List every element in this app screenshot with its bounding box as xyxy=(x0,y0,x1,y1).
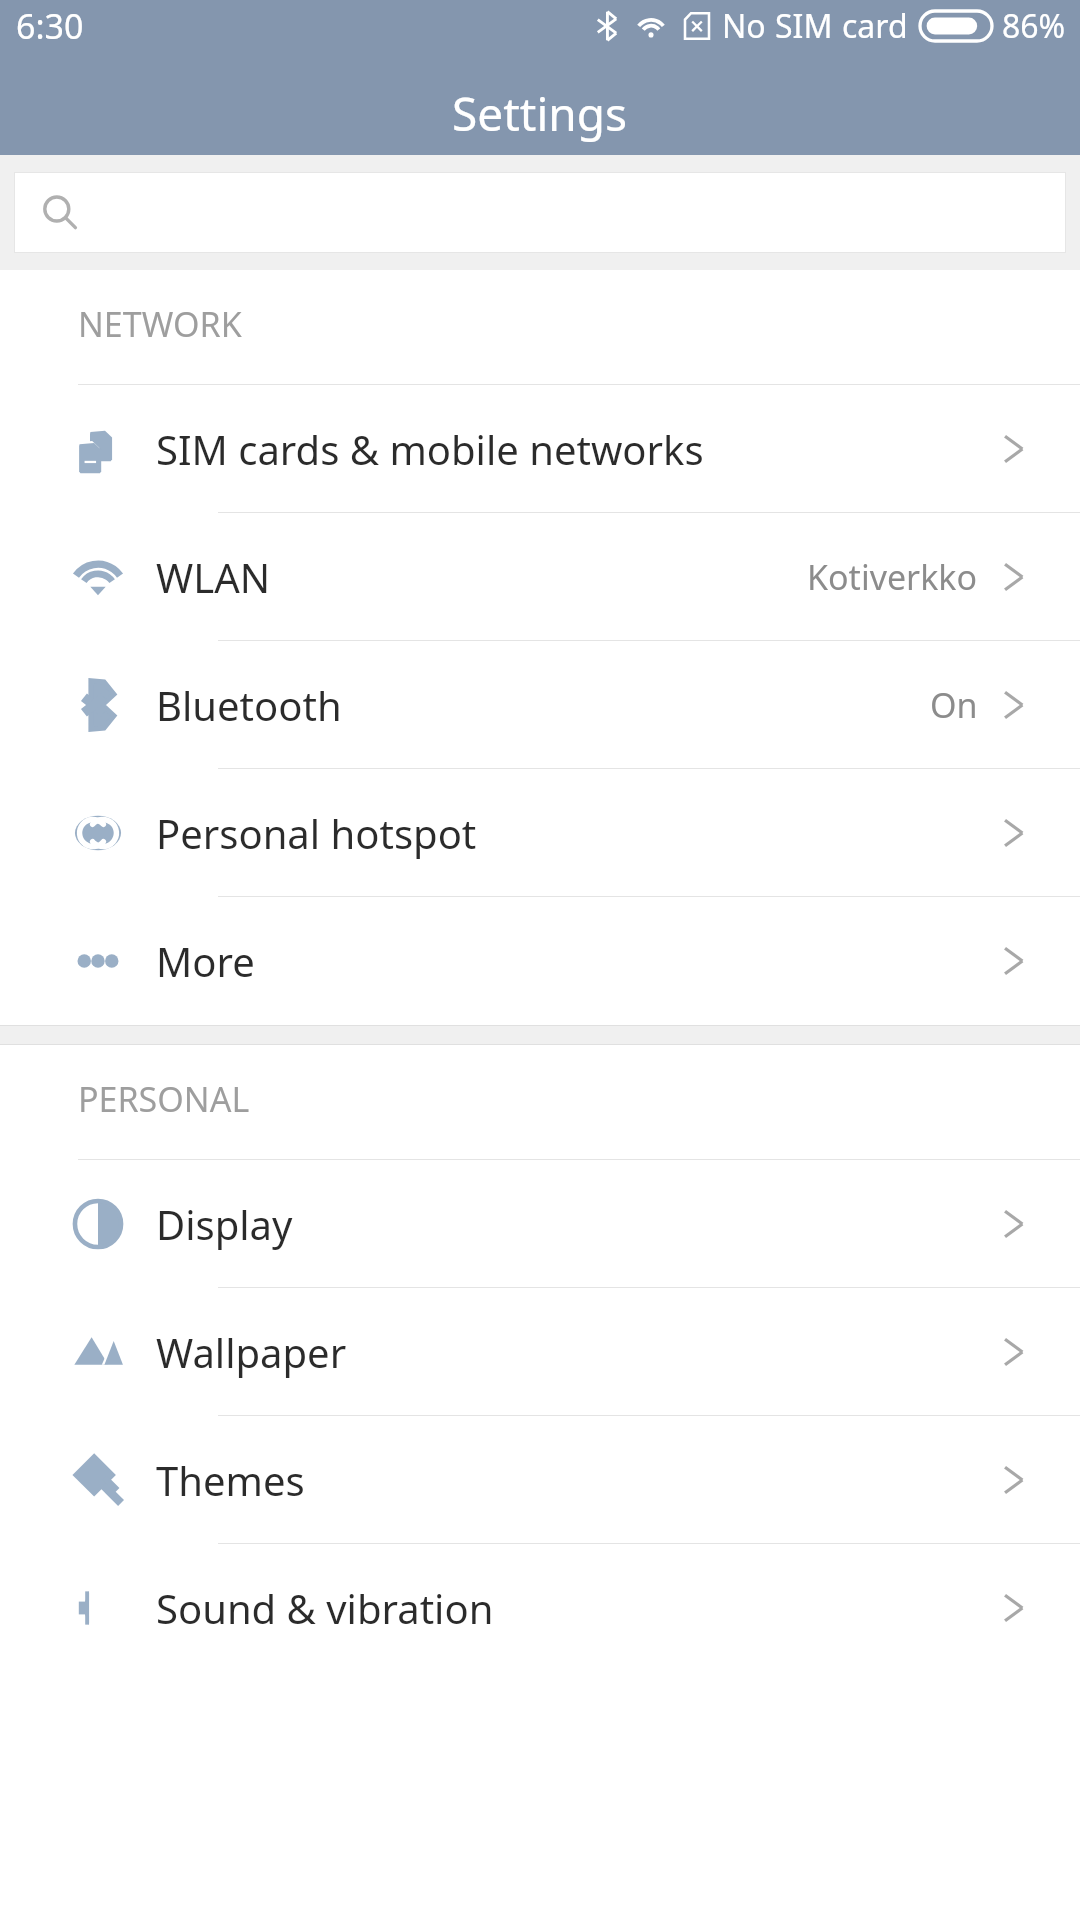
button[interactable]: WLAN xyxy=(0,513,1080,641)
button[interactable]: SIM cards & mobile networks xyxy=(0,385,1080,513)
staticText: Themes xyxy=(156,1453,305,1507)
staticText: Display xyxy=(156,1197,293,1251)
staticText: Wallpaper xyxy=(156,1325,347,1379)
staticText: Bluetooth xyxy=(156,678,342,732)
staticText: More xyxy=(156,934,255,988)
staticText: Settings xyxy=(452,82,628,145)
staticText: 86% xyxy=(1002,4,1066,48)
staticText: SIM cards & mobile networks xyxy=(156,422,704,476)
staticText: Kotiverkko xyxy=(807,554,978,600)
button[interactable]: Wallpaper xyxy=(0,1288,1080,1416)
staticText: Personal hotspot xyxy=(156,806,477,860)
staticText: No xyxy=(722,4,766,48)
staticText: On xyxy=(930,682,978,728)
button[interactable]: Search xyxy=(14,172,1066,253)
button[interactable]: Personal hotspot xyxy=(0,769,1080,897)
button[interactable]: More xyxy=(0,897,1080,1025)
button[interactable]: Display xyxy=(0,1160,1080,1288)
staticText: card xyxy=(842,4,908,48)
staticText: WLAN xyxy=(156,550,271,604)
staticText: Sound & vibration xyxy=(156,1581,494,1635)
button[interactable]: Bluetooth xyxy=(0,641,1080,769)
button[interactable]: Themes xyxy=(0,1416,1080,1544)
staticText: SIM xyxy=(775,4,833,48)
staticText: 6:30 xyxy=(16,3,84,49)
button[interactable]: Sound & vibration xyxy=(0,1544,1080,1672)
staticText: PERSONAL xyxy=(78,1076,250,1122)
staticText: NETWORK xyxy=(78,301,242,347)
other: Search xyxy=(40,193,80,233)
